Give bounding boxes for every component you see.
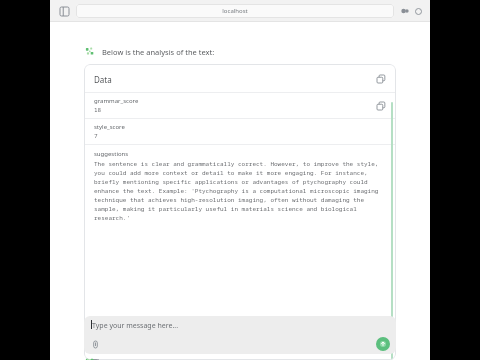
staticText: grammar_score — [94, 97, 139, 105]
staticText: Below is the analysis of the text: — [102, 47, 215, 57]
staticText: Type your message here... — [92, 321, 179, 331]
staticText: The sentence is clear and grammatically … — [94, 160, 382, 222]
button[interactable]: Copy — [374, 99, 388, 113]
staticText: Data — [94, 74, 112, 85]
staticText: localhost — [222, 7, 248, 15]
staticText: style_score — [94, 123, 125, 131]
staticText: 7 — [94, 132, 98, 140]
button[interactable]: localhost — [76, 4, 394, 18]
button[interactable]: Send — [376, 337, 390, 351]
button[interactable]: Extensions — [398, 4, 412, 18]
button[interactable]: Toggle sidebar — [56, 3, 72, 19]
staticText: suggestions — [94, 150, 129, 158]
staticText: 18 — [94, 106, 102, 114]
button[interactable]: Attach file — [89, 338, 101, 350]
button[interactable]: Reload — [412, 5, 424, 17]
button[interactable]: Copy — [374, 72, 388, 86]
